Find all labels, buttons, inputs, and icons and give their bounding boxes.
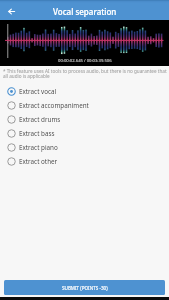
- staticText: 00:00:02.645 / 00:03:39.506: [58, 58, 112, 64]
- button[interactable]: Extract accompaniment: [0, 98, 169, 112]
- staticText: SUBMIT (POINTS -30): [62, 285, 108, 291]
- button[interactable]: Extract other: [0, 154, 169, 168]
- button[interactable]: Extract piano: [0, 140, 169, 154]
- staticText: Extract vocal: [19, 87, 57, 96]
- button[interactable]: Extract bass: [0, 126, 169, 140]
- staticText: * This feature uses AI tools to process …: [3, 68, 168, 80]
- staticText: Extract drums: [19, 115, 61, 124]
- staticText: Extract accompaniment: [19, 101, 89, 110]
- staticText: Extract bass: [19, 129, 55, 138]
- button[interactable]: SUBMIT (POINTS -30): [4, 280, 165, 295]
- staticText: Extract other: [19, 157, 58, 166]
- button[interactable]: Extract drums: [0, 112, 169, 126]
- staticText: Vocal separation: [53, 6, 117, 17]
- staticText: Extract piano: [19, 143, 58, 152]
- button[interactable]: Extract vocal: [0, 84, 169, 98]
- button[interactable]: Back: [0, 3, 22, 20]
